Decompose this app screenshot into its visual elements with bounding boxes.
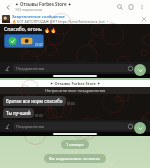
staticText: Поздравления <box>16 66 45 71</box>
staticText: ✦ Отзывы Forbes Store ✦ <box>15 1 72 7</box>
staticText: 103 подписчика <box>15 7 43 12</box>
button[interactable]: Поздравления <box>13 122 136 130</box>
staticText: Братан все норм спасибо <box>6 98 63 104</box>
staticText: 21:02 <box>35 43 43 47</box>
button[interactable]: Voice message <box>138 64 147 73</box>
button[interactable]: Братан все норм спасибо <box>3 96 66 106</box>
button[interactable]: Attach <box>3 64 12 73</box>
staticText: 01:03 <box>35 114 43 118</box>
button[interactable]: More options <box>136 1 147 12</box>
button[interactable]: 1 января <box>61 140 89 149</box>
button[interactable]: 21:02 <box>4 34 44 48</box>
button[interactable]: Ты лучший <box>3 108 34 118</box>
button[interactable]: Close pinned message <box>140 15 148 23</box>
button[interactable]: Вы подписались на канал <box>44 154 106 163</box>
button[interactable]: Закрепленное сообщение <box>0 13 150 24</box>
button[interactable]: Back <box>3 2 13 12</box>
staticText: 🔥 <box>12 20 17 24</box>
other: Emoji <box>128 66 133 71</box>
staticText: Ты лучший <box>6 110 31 116</box>
button[interactable]: Scroll to bottom <box>134 122 146 134</box>
staticText: Вы подписались на канал <box>49 156 101 161</box>
staticText: Непрочитанные поздравления <box>45 88 106 93</box>
button[interactable]: Поздравления <box>13 64 136 72</box>
button[interactable]: Mute <box>125 1 136 12</box>
staticText: 🔥🔥 <box>44 27 57 33</box>
staticText: Закрепленное сообщение <box>12 14 65 19</box>
button[interactable]: Attach <box>3 122 12 131</box>
button[interactable]: Voice message <box>138 122 147 131</box>
staticText: 1 января <box>66 142 84 147</box>
staticText: БОТ АВТОПРОДАЖ @KT https://t.me/forbesst… <box>17 19 113 24</box>
staticText: ✦ Отзывы Forbes Store ✦ <box>50 81 101 86</box>
button[interactable]: Scroll to bottom <box>134 64 146 76</box>
staticText: 01:03 <box>67 102 75 106</box>
staticText: Поздравления <box>16 124 45 129</box>
staticText: Спасибо, огонь <box>4 26 42 33</box>
button[interactable]: Search <box>114 1 125 12</box>
other: Emoji <box>128 124 133 129</box>
